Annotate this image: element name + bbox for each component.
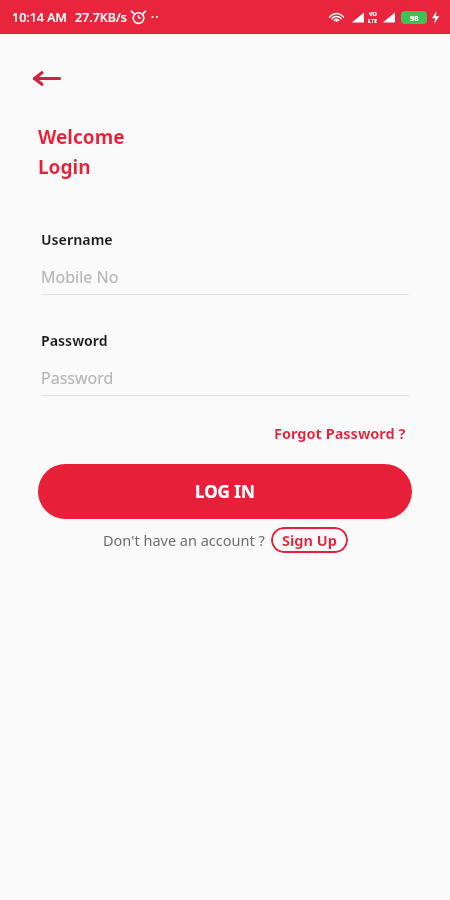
staticText: Login bbox=[38, 154, 91, 180]
staticText: Mobile No bbox=[41, 266, 119, 288]
staticText: Sign Up bbox=[282, 530, 337, 550]
staticText: Don't have an account ? bbox=[103, 530, 265, 550]
button[interactable]: Forgot Password ? bbox=[271, 420, 409, 446]
staticText: Welcome bbox=[38, 124, 125, 150]
button[interactable]: Sign Up bbox=[271, 527, 348, 553]
button[interactable]: Back bbox=[24, 56, 68, 100]
staticText: Password bbox=[41, 367, 114, 389]
staticText: VO bbox=[369, 10, 377, 17]
staticText: LTE bbox=[368, 17, 378, 24]
staticText: Forgot Password ? bbox=[274, 423, 406, 443]
button[interactable]: LOG IN bbox=[38, 464, 412, 519]
staticText: Username bbox=[41, 230, 113, 249]
staticText: 10:14 AM bbox=[12, 9, 67, 26]
staticText: 98 bbox=[410, 13, 419, 23]
staticText: Password bbox=[41, 331, 108, 350]
staticText: LOG IN bbox=[195, 480, 255, 503]
staticText: 27.7KB/s bbox=[75, 9, 127, 26]
